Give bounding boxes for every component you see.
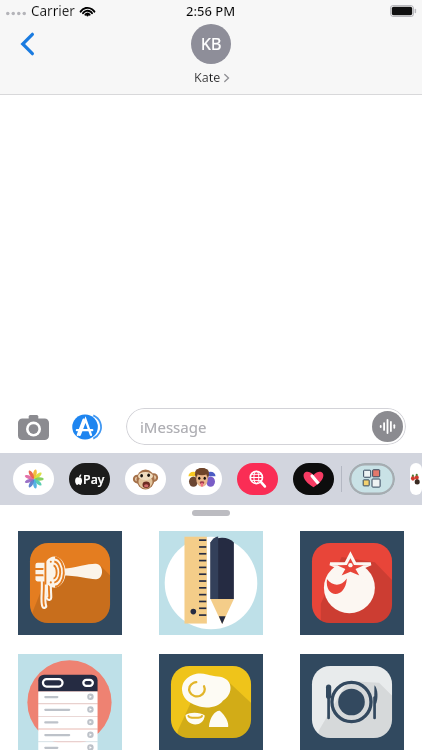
button[interactable]: App Store <box>67 408 105 446</box>
button[interactable]: Back <box>6 22 50 66</box>
button[interactable]: Photos <box>13 463 54 495</box>
button[interactable]: Fried egg sticker <box>159 654 263 750</box>
staticText: Kate <box>194 69 221 86</box>
button[interactable]: iMessage <box>126 408 406 445</box>
button[interactable]: Tomato sticker <box>300 531 404 635</box>
button[interactable]: KB <box>191 22 231 86</box>
button[interactable]: #images <box>237 463 278 495</box>
staticText: KB <box>201 33 222 55</box>
button[interactable]: Spaghetti sticker <box>18 531 122 635</box>
button[interactable]: Memoji stickers <box>181 463 222 495</box>
button[interactable]: Ruler and pencil sticker <box>159 531 263 635</box>
button[interactable]: Food stickers <box>349 463 395 495</box>
button[interactable]: Menu sticker <box>18 654 122 750</box>
button[interactable]: Dinner plate sticker <box>300 654 404 750</box>
staticText: Carrier <box>31 2 75 20</box>
button[interactable]: Apple Pay <box>69 463 110 495</box>
staticText: 2:56 PM <box>186 2 236 20</box>
button[interactable]: Record audio message <box>372 411 403 442</box>
button[interactable]: Music <box>293 463 334 495</box>
button[interactable]: Animoji <box>125 463 166 495</box>
staticText: iMessage <box>140 417 207 437</box>
button[interactable]: Fruit stickers <box>410 463 422 495</box>
button[interactable]: Camera <box>15 409 51 445</box>
staticText: Pay <box>83 471 105 488</box>
